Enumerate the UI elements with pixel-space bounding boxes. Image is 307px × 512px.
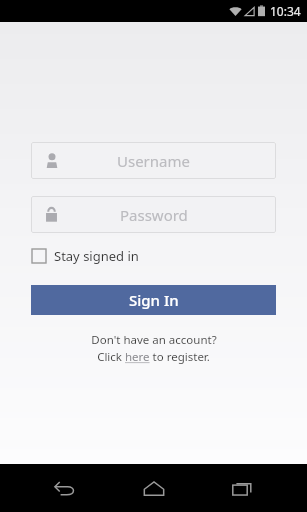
button[interactable]: Recent apps — [219, 465, 265, 511]
staticText: Sign In — [129, 290, 179, 310]
staticText: 10:34 — [270, 3, 301, 19]
button[interactable]: Password — [31, 196, 276, 233]
button[interactable]: Sign In — [31, 285, 276, 315]
staticText: Username — [117, 151, 190, 171]
staticText: Password — [120, 205, 188, 225]
button[interactable]: Back — [42, 465, 88, 511]
staticText: Stay signed in — [54, 247, 139, 265]
staticText: Click here to register. — [97, 349, 210, 365]
button[interactable]: Click here to register. — [97, 349, 210, 365]
button[interactable]: Home — [131, 465, 177, 511]
button[interactable]: Username — [31, 142, 276, 179]
staticText: Don't have an account? — [91, 332, 217, 348]
button[interactable]: Stay signed in — [32, 247, 275, 265]
